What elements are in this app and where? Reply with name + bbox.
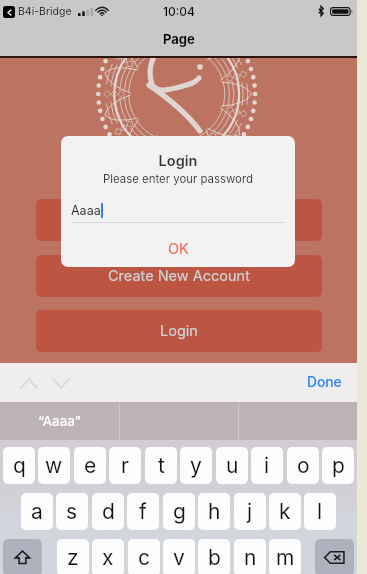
button[interactable]: k: [269, 493, 301, 530]
button[interactable]: Next field: [46, 368, 76, 398]
button[interactable]: b: [198, 539, 230, 574]
staticText: r: [121, 453, 129, 478]
staticText: z: [67, 545, 79, 570]
button[interactable]: l: [304, 493, 336, 530]
button[interactable]: Create New Account: [36, 255, 322, 297]
staticText: x: [102, 545, 114, 570]
staticText: “Aaaa”: [38, 413, 81, 429]
button[interactable]: e: [74, 447, 106, 484]
button[interactable]: “Aaaa”: [0, 402, 119, 440]
button[interactable]: y: [180, 447, 212, 484]
button[interactable]: Done: [307, 374, 342, 391]
staticText: h: [208, 499, 221, 524]
staticText: n: [244, 545, 257, 570]
staticText: B4i-Bridge: [18, 5, 72, 18]
button[interactable]: r: [109, 447, 141, 484]
button[interactable]: v: [163, 539, 195, 574]
staticText: i: [264, 453, 270, 478]
staticText: Please enter your password: [61, 172, 295, 186]
staticText: Done: [307, 374, 342, 391]
button[interactable]: m: [269, 539, 301, 574]
button[interactable]: h: [198, 493, 230, 530]
button[interactable]: d: [92, 493, 124, 530]
staticText: Create New Account: [108, 267, 250, 285]
staticText: 10:04: [163, 4, 195, 19]
staticText: y: [190, 453, 202, 478]
button[interactable]: q: [3, 447, 35, 484]
staticText: u: [226, 453, 239, 478]
staticText: m: [276, 545, 295, 570]
staticText: g: [173, 499, 186, 524]
staticText: j: [247, 499, 253, 524]
button[interactable]: OK: [61, 232, 295, 266]
button[interactable]: w: [38, 447, 70, 484]
staticText: v: [173, 545, 185, 570]
staticText: Aaaa: [71, 203, 101, 218]
button[interactable]: x: [92, 539, 124, 574]
staticText: w: [45, 453, 63, 478]
button[interactable]: s: [56, 493, 88, 530]
staticText: Login: [160, 322, 198, 340]
staticText: c: [138, 545, 150, 570]
button[interactable]: Button1: [36, 199, 322, 241]
button[interactable]: Back to B4i-Bridge: [3, 6, 15, 18]
button[interactable]: c: [128, 539, 160, 574]
button[interactable]: n: [234, 539, 266, 574]
staticText: d: [102, 499, 115, 524]
staticText: t: [158, 453, 165, 478]
button[interactable]: u: [216, 447, 248, 484]
staticText: Page: [163, 31, 195, 47]
staticText: f: [139, 499, 147, 524]
button[interactable]: Login: [36, 310, 322, 352]
button[interactable]: Backspace: [315, 539, 354, 574]
button[interactable]: Previous field: [14, 368, 44, 398]
staticText: o: [297, 453, 310, 478]
staticText: Login: [61, 152, 295, 170]
button[interactable]: o: [287, 447, 319, 484]
staticText: Button1: [154, 211, 204, 229]
staticText: a: [31, 499, 43, 524]
button[interactable]: t: [145, 447, 177, 484]
staticText: e: [84, 453, 97, 478]
staticText: l: [317, 499, 323, 524]
staticText: k: [279, 499, 291, 524]
button[interactable]: f: [127, 493, 159, 530]
staticText: q: [13, 453, 26, 478]
button[interactable]: Shift: [3, 539, 42, 574]
button[interactable]: g: [163, 493, 195, 530]
button[interactable]: i: [251, 447, 283, 484]
button[interactable]: z: [57, 539, 89, 574]
button[interactable]: j: [234, 493, 266, 530]
staticText: b: [208, 545, 221, 570]
staticText: OK: [168, 240, 189, 258]
button[interactable]: p: [322, 447, 354, 484]
staticText: s: [66, 499, 78, 524]
staticText: p: [332, 453, 345, 478]
button[interactable]: a: [21, 493, 53, 530]
